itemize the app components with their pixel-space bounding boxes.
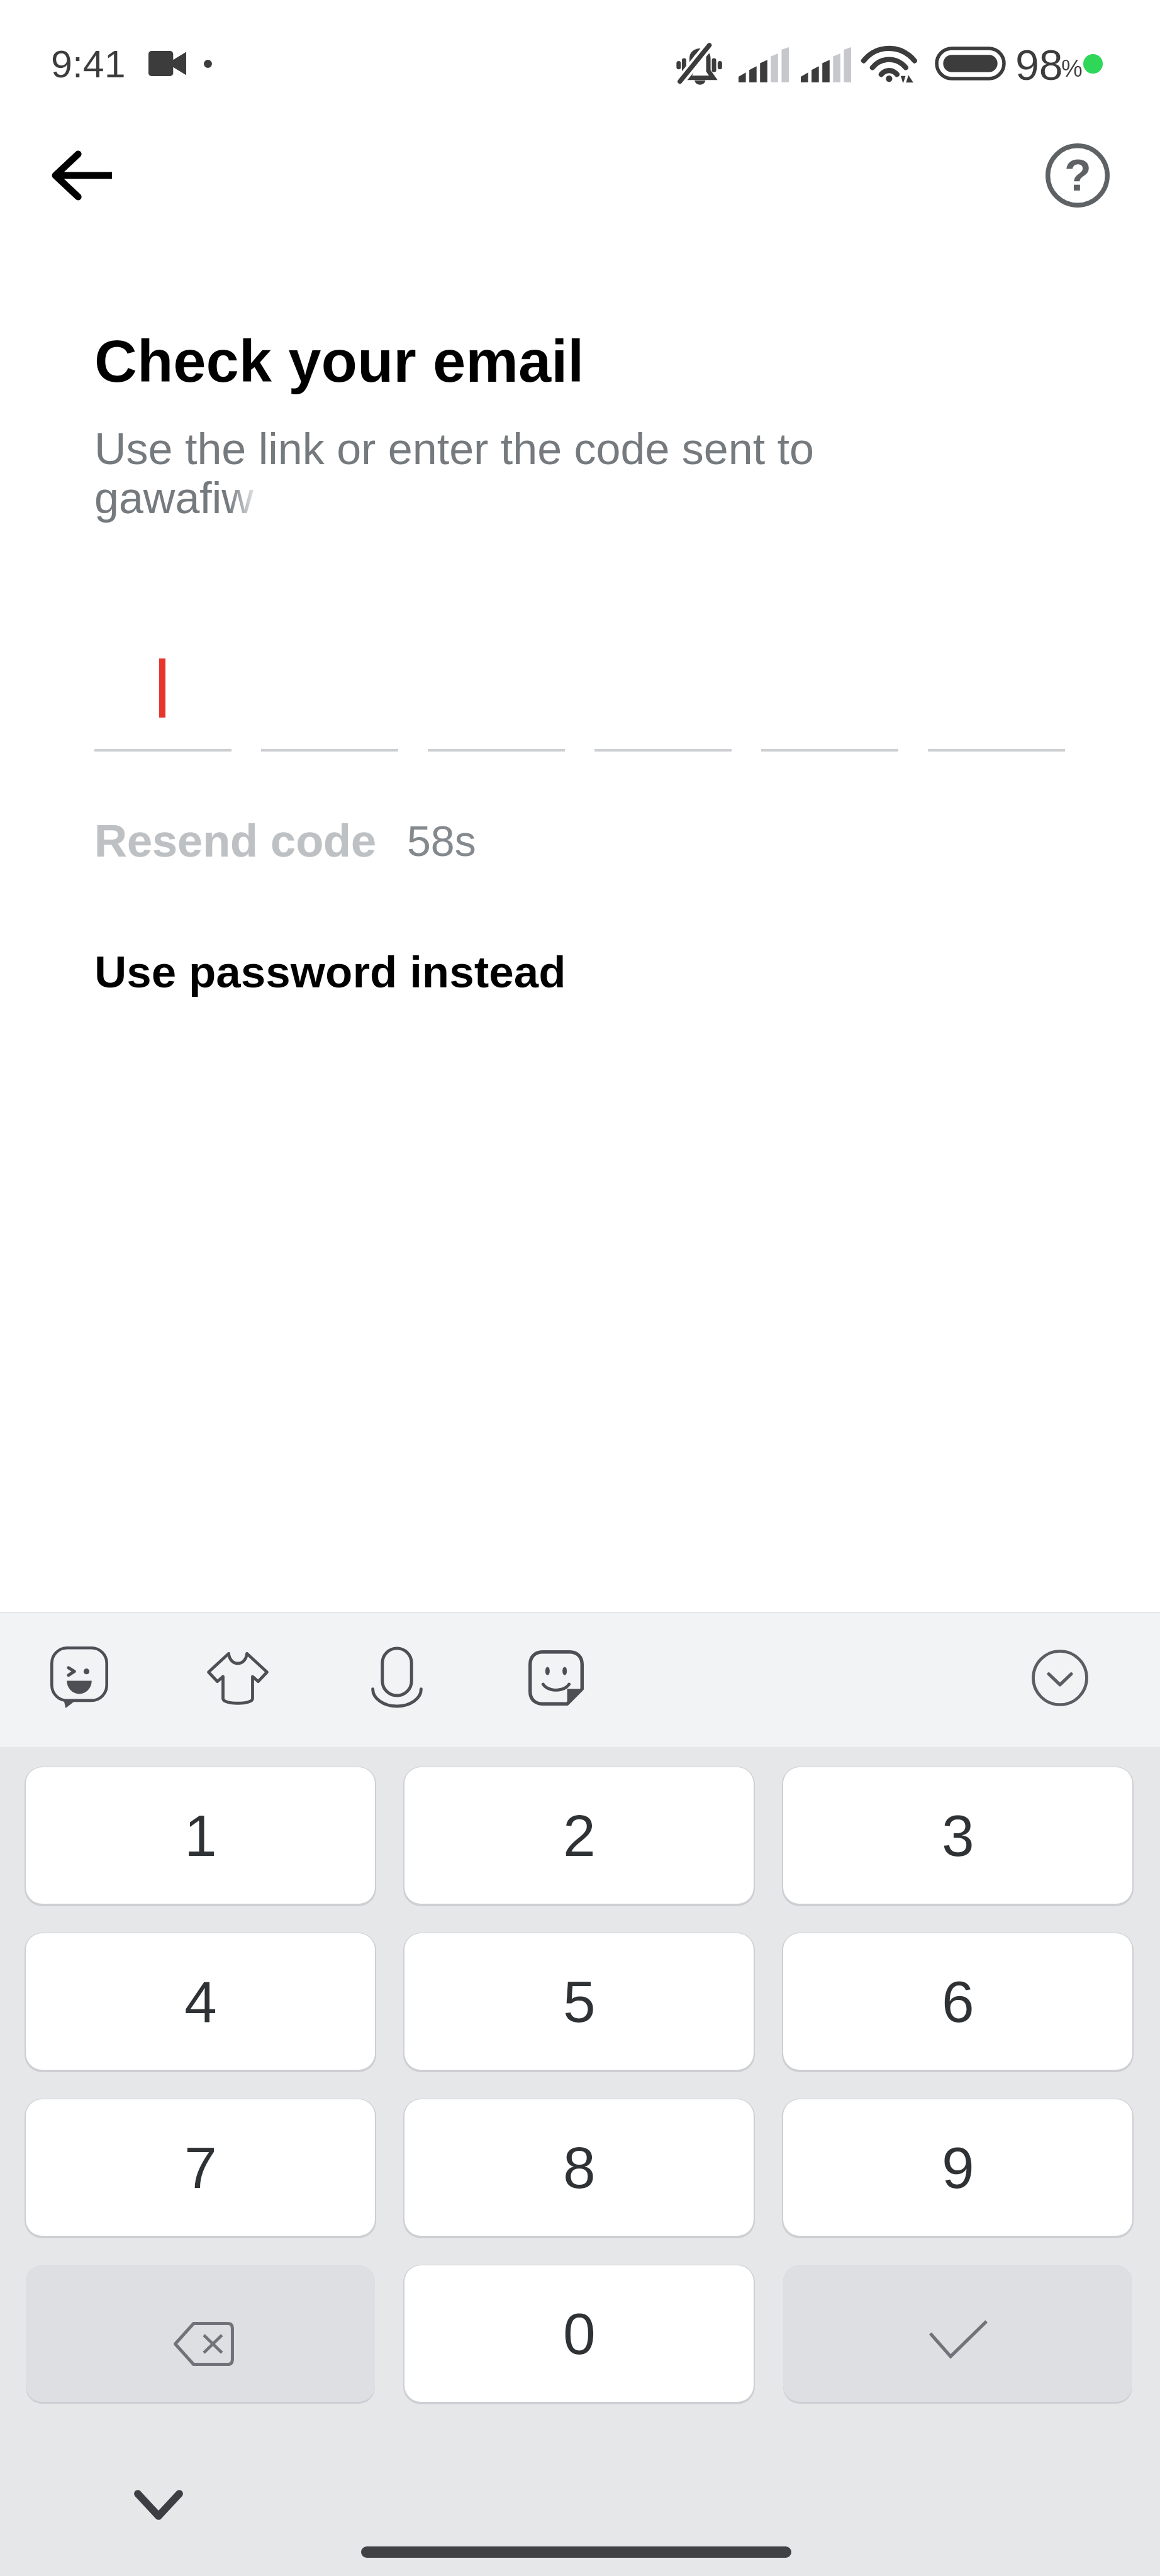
button[interactable]: 6: [783, 1933, 1132, 2070]
button[interactable]: Help: [1024, 128, 1131, 223]
staticText: 98: [1015, 41, 1063, 89]
button[interactable]: Resend code: [94, 816, 476, 866]
staticText: Use the link or enter the code sent to: [94, 425, 814, 474]
staticText: 9: [942, 2135, 974, 2201]
staticText: 5: [563, 1969, 596, 2035]
button[interactable]: Back: [25, 128, 138, 223]
staticText: gawafiw: [94, 474, 254, 523]
button[interactable]: 5: [404, 1933, 754, 2070]
button[interactable]: Avatar stickers: [196, 1636, 280, 1720]
button[interactable]: 3: [783, 1767, 1132, 1904]
staticText: ?: [1064, 151, 1091, 200]
staticText: 0: [563, 2301, 596, 2367]
button[interactable]: Voice input: [355, 1635, 439, 1719]
staticText: 1: [184, 1803, 217, 1868]
button[interactable]: Emoji: [514, 1636, 598, 1720]
button[interactable]: Collapse keyboard: [1022, 1640, 1098, 1716]
button[interactable]: 0: [404, 2265, 754, 2402]
button[interactable]: 4: [26, 1933, 375, 2070]
button[interactable]: Hide keyboard: [121, 2467, 196, 2543]
staticText: Resend code: [94, 816, 377, 866]
button[interactable]: 1: [26, 1767, 375, 1904]
staticText: 58s: [407, 817, 476, 865]
staticText: 7: [184, 2135, 217, 2201]
staticText: 9:41: [51, 43, 126, 86]
staticText: 2: [563, 1803, 596, 1868]
button[interactable]: 9: [783, 2099, 1132, 2236]
staticText: 3: [942, 1803, 974, 1868]
button[interactable]: 8: [404, 2099, 754, 2236]
button[interactable]: Stickers: [37, 1635, 121, 1719]
staticText: 8: [563, 2135, 596, 2201]
staticText: Check your email: [94, 328, 584, 394]
staticText: 6: [942, 1969, 974, 2035]
button[interactable]: 2: [404, 1767, 754, 1904]
staticText: %: [1061, 55, 1083, 82]
staticText: Use password instead: [94, 947, 566, 997]
button[interactable]: Done: [783, 2265, 1132, 2402]
staticText: 4: [184, 1969, 217, 2035]
button[interactable]: Backspace: [26, 2265, 375, 2402]
button[interactable]: Use password instead: [94, 947, 566, 997]
button[interactable]: 7: [26, 2099, 375, 2236]
